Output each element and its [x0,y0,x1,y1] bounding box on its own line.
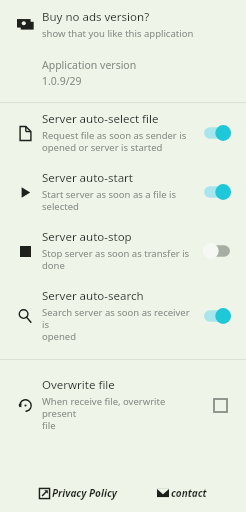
staticText: Stop server as soon as transfer is done [42,247,190,272]
staticText: Privacy Policy [52,486,117,500]
staticText: contact [171,486,207,500]
staticText: Application version [42,58,137,72]
staticText: Buy no ads version? [42,9,150,25]
button[interactable]: Overwrite file [0,377,246,432]
button[interactable]: Privacy Policy [37,484,119,502]
button[interactable]: Enabled [200,181,234,203]
button[interactable]: Server auto-search [0,288,246,343]
staticText: Request file as soon as sender is opened… [42,129,187,154]
staticText: Server auto-search [42,288,144,304]
button[interactable]: contact [155,484,209,502]
button[interactable]: Application version [0,56,246,94]
staticText: 1.0.9/29 [42,74,82,88]
staticText: Search server as soon as receiver is ope… [42,306,196,343]
button[interactable]: Server auto-stop [0,229,246,272]
staticText: Start server as soon as a file is select… [42,188,177,213]
button[interactable]: Server auto-start [0,170,246,213]
staticText: Server auto-select file [42,111,159,127]
button[interactable]: Enabled [200,305,234,327]
staticText: show that you like this application [42,27,194,40]
button[interactable]: Enabled [200,122,234,144]
button[interactable]: Disabled [200,240,234,262]
button[interactable]: Buy no ads version? [0,0,246,44]
staticText: When receive file, overwrite present fil… [42,395,200,432]
staticText: Server auto-start [42,170,133,186]
button[interactable]: Overwrite file checkbox [206,391,234,419]
button[interactable]: Server auto-select file [0,111,246,154]
staticText: Server auto-stop [42,229,132,245]
staticText: Overwrite file [42,377,115,393]
